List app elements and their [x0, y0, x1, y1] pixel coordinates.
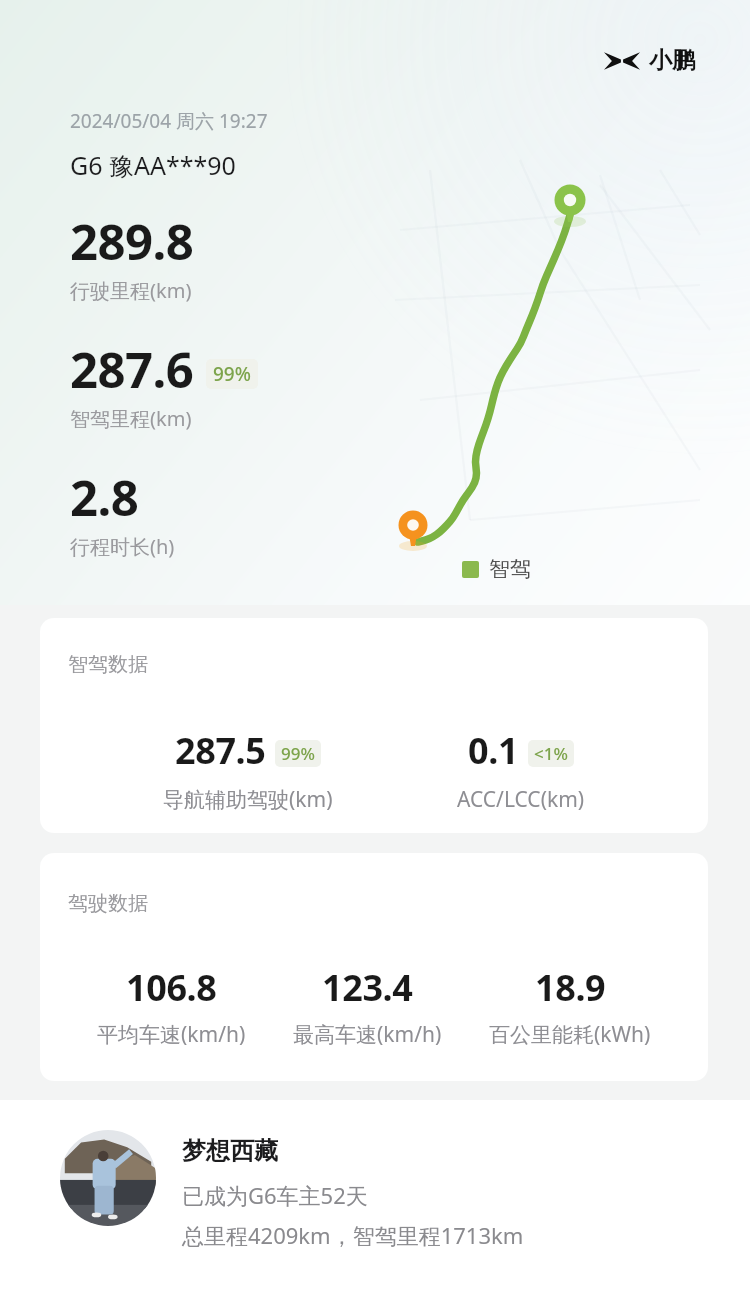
- staticText: 平均车速(km/h): [97, 1020, 246, 1049]
- button[interactable]: 驾驶数据: [40, 853, 708, 1081]
- staticText: 智驾里程(km): [70, 405, 192, 432]
- staticText: 导航辅助驾驶(km): [163, 785, 333, 814]
- staticText: 智驾: [489, 556, 531, 582]
- staticText: 梦想西藏: [182, 1136, 278, 1166]
- staticText: <1%: [534, 742, 568, 765]
- button[interactable]: XPeng: [600, 42, 699, 79]
- staticText: 智驾数据: [68, 652, 148, 677]
- staticText: 小鹏: [649, 46, 695, 75]
- staticText: 106.8: [126, 963, 217, 1012]
- staticText: 最高车速(km/h): [293, 1020, 442, 1049]
- staticText: 18.9: [535, 963, 606, 1012]
- staticText: 驾驶数据: [68, 891, 148, 916]
- staticText: 289.8: [70, 208, 194, 275]
- button[interactable]: 智驾数据: [40, 618, 708, 833]
- staticText: 总里程4209km，智驾里程1713km: [182, 1220, 524, 1250]
- staticText: 2.8: [70, 464, 139, 531]
- staticText: ACC/LCC(km): [457, 785, 585, 814]
- staticText: 百公里能耗(kWh): [489, 1020, 651, 1049]
- staticText: 99%: [281, 742, 315, 765]
- button[interactable]: Profile photo: [0, 1130, 750, 1244]
- staticText: 行驶里程(km): [70, 277, 192, 304]
- staticText: 123.4: [322, 963, 413, 1012]
- staticText: 287.5: [175, 726, 266, 775]
- staticText: 0.1: [468, 726, 519, 775]
- staticText: 2024/05/04 周六 19:27: [70, 108, 268, 134]
- staticText: 99%: [213, 361, 251, 387]
- staticText: 行程时长(h): [70, 533, 175, 560]
- staticText: 287.6: [70, 336, 194, 403]
- other: Profile photo: [60, 1130, 156, 1226]
- staticText: 已成为G6车主52天: [182, 1180, 368, 1210]
- staticText: G6 豫AA***90: [70, 148, 236, 182]
